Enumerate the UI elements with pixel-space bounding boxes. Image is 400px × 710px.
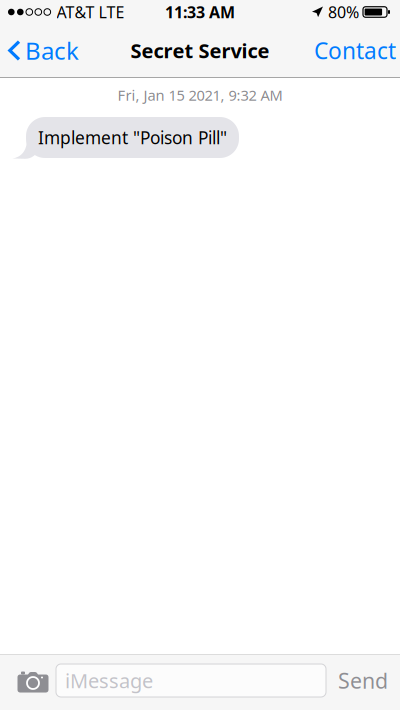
staticText: Secret Service xyxy=(130,37,269,64)
staticText: Fri, Jan 15 2021, 9:32 AM xyxy=(117,85,282,105)
staticText: AT&T LTE xyxy=(57,1,125,23)
staticText: iMessage xyxy=(65,667,153,694)
button[interactable]: Contact xyxy=(314,30,400,70)
button[interactable]: Back xyxy=(0,30,87,70)
staticText: Implement "Poison Pill" xyxy=(38,126,227,149)
button[interactable]: Take photo or video xyxy=(10,664,56,697)
staticText: Send xyxy=(338,666,388,695)
button[interactable]: iMessage xyxy=(56,664,326,697)
staticText: Back xyxy=(25,35,79,66)
staticText: 80% xyxy=(328,1,359,23)
staticText: 11:33 AM xyxy=(165,1,235,23)
staticText: Contact xyxy=(314,35,396,65)
button[interactable]: Send xyxy=(326,664,400,697)
